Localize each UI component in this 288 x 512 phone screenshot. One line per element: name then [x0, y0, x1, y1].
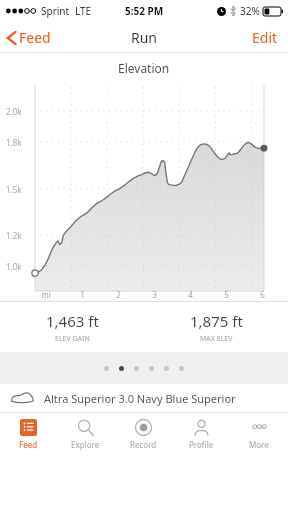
button[interactable]: 1,463 ft: [0, 302, 144, 352]
staticText: Altra Superior 3.0 Navy Blue Superior: [44, 391, 236, 406]
staticText: 1,463 ft: [46, 311, 99, 331]
button[interactable]: Edit: [242, 23, 288, 52]
button[interactable]: 1,875 ft: [144, 302, 288, 352]
staticText: MAX ELEV: [200, 334, 233, 344]
staticText: Feed: [19, 439, 38, 450]
button[interactable]: Profile: [172, 413, 230, 456]
staticText: 5:52 PM: [125, 4, 164, 18]
staticText: ELEV GAIN: [55, 334, 90, 344]
staticText: 1.5k: [6, 184, 22, 195]
staticText: 6: [260, 289, 265, 300]
staticText: 1,875 ft: [190, 311, 243, 331]
button[interactable]: Explore: [57, 413, 114, 456]
button[interactable]: Feed: [0, 24, 59, 51]
staticText: Sprint: [41, 4, 70, 18]
staticText: Explore: [71, 439, 100, 450]
staticText: 2.0k: [6, 106, 22, 117]
button[interactable]: More: [230, 413, 288, 456]
staticText: 2: [116, 289, 121, 300]
staticText: 1.8k: [6, 137, 22, 148]
button[interactable]: Shoe: [0, 384, 288, 412]
staticText: 3: [152, 289, 157, 300]
staticText: Run: [131, 28, 158, 47]
staticText: 1: [80, 289, 85, 300]
staticText: 5: [224, 289, 229, 300]
staticText: 32%: [240, 4, 260, 18]
button[interactable]: Record: [114, 413, 172, 456]
staticText: More: [249, 439, 269, 450]
other: Shoe: [10, 391, 34, 405]
staticText: Feed: [19, 28, 51, 47]
staticText: 4: [188, 289, 193, 300]
staticText: Elevation: [118, 60, 170, 76]
button[interactable]: Feed: [0, 413, 57, 456]
staticText: 1.2k: [6, 230, 22, 241]
staticText: Record: [130, 439, 157, 450]
staticText: LTE: [75, 4, 92, 18]
staticText: 1.0k: [6, 261, 22, 272]
staticText: mi: [41, 289, 51, 300]
staticText: Profile: [189, 439, 214, 450]
